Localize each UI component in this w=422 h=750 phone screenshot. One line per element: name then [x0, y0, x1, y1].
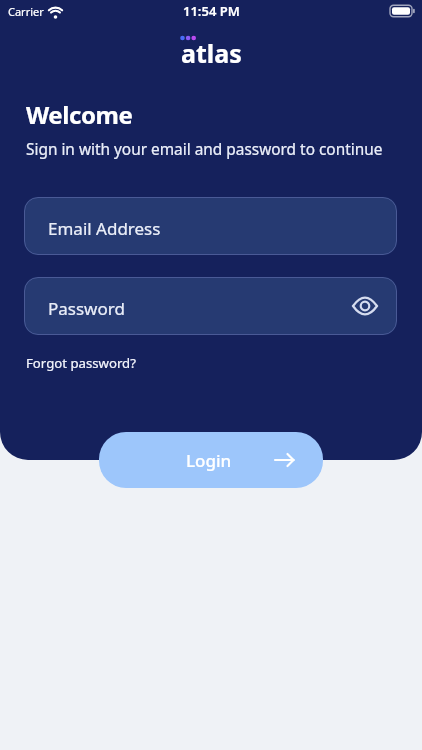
staticText: 11:54 PM — [183, 2, 240, 20]
button[interactable]: Login — [99, 432, 323, 488]
staticText: atlas — [181, 36, 242, 70]
button[interactable] — [353, 298, 377, 314]
button[interactable]: Forgot password? — [26, 354, 136, 372]
staticText: Sign in with your email and password to … — [26, 139, 383, 160]
staticText: Welcome — [26, 98, 133, 131]
staticText: Login — [186, 449, 232, 472]
staticText: Password — [48, 297, 125, 320]
staticText: Email Address — [48, 217, 161, 240]
button[interactable]: Email Address — [24, 197, 397, 255]
staticText: Carrier — [8, 4, 44, 19]
button[interactable]: Password — [24, 277, 397, 335]
